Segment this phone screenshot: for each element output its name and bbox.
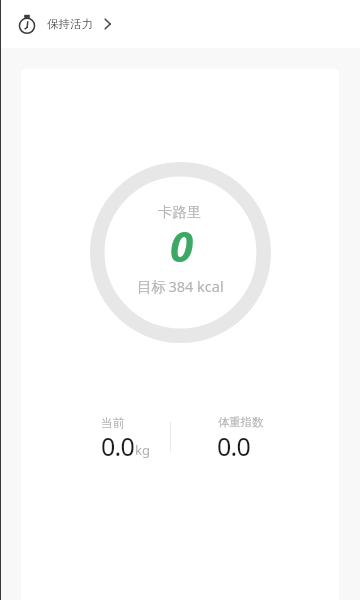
button[interactable]: Stay active, stopwatch [0, 0, 360, 48]
staticText: 目标 384 kcal [137, 276, 224, 296]
staticText: 体重指数 [218, 415, 264, 429]
staticText: 0 [170, 217, 194, 274]
staticText: 卡路里 [158, 203, 202, 221]
staticText: 当前 [101, 415, 125, 430]
staticText: 保持活力 [47, 17, 93, 31]
staticText: 0.0 [101, 429, 135, 463]
staticText: kg [135, 441, 150, 459]
other: Stay active, stopwatch [18, 15, 36, 33]
staticText: 0.0 [217, 429, 251, 463]
